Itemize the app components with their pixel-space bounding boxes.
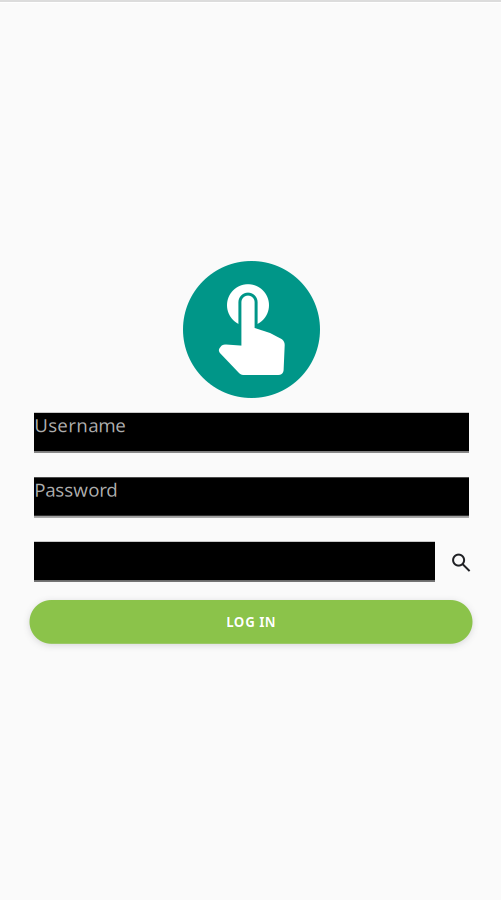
button[interactable]: Password: [34, 477, 469, 517]
button[interactable]: Search: [444, 545, 480, 581]
staticText: LOG IN: [226, 613, 276, 631]
staticText: Password: [34, 477, 117, 502]
button[interactable]: Username: [34, 413, 469, 453]
button[interactable]: Search field: [34, 542, 435, 582]
staticText: Username: [34, 412, 126, 437]
button[interactable]: LOG IN: [29, 600, 472, 644]
